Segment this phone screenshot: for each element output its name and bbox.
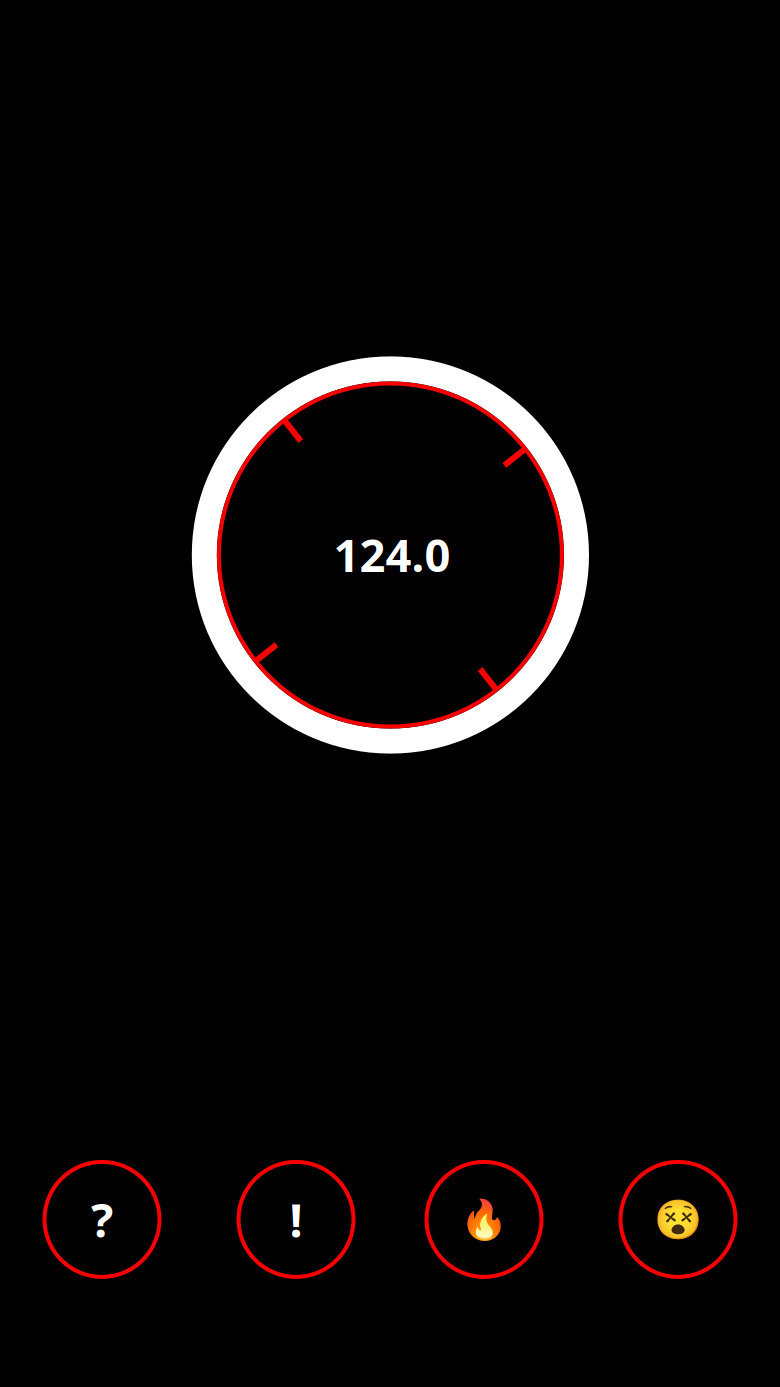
button[interactable]: Dizzy bbox=[618, 1160, 737, 1279]
button[interactable]: Hot bbox=[424, 1160, 543, 1279]
staticText: ? bbox=[91, 1188, 113, 1250]
staticText: 😵 bbox=[654, 1197, 702, 1241]
staticText: 🔥 bbox=[460, 1197, 508, 1241]
button[interactable]: Warning bbox=[236, 1160, 355, 1279]
staticText: ! bbox=[289, 1188, 302, 1250]
staticText: 124.0 bbox=[333, 524, 450, 585]
button[interactable]: Help bbox=[42, 1160, 161, 1279]
